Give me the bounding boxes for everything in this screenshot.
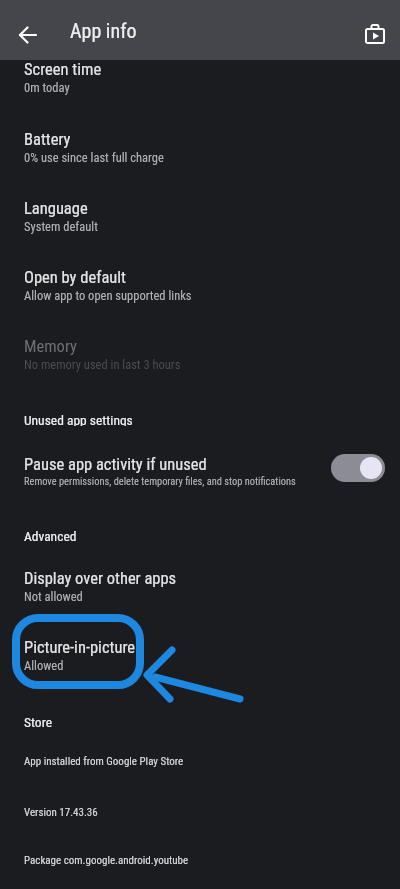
staticText: System default — [24, 219, 98, 234]
staticText: 0% use since last full charge — [24, 150, 164, 165]
staticText: Not allowed — [24, 589, 83, 604]
staticText: Pause app activity if unused — [24, 455, 207, 474]
staticText: App installed from Google Play Store — [24, 755, 184, 768]
button[interactable]: Picture-in-picture — [0, 625, 400, 687]
staticText: Battery — [24, 130, 71, 149]
staticText: Memory — [24, 337, 77, 356]
button[interactable]: Battery — [0, 117, 400, 179]
button[interactable] — [355, 14, 395, 54]
staticText: Allow app to open supported links — [24, 288, 192, 303]
staticText: 0m today — [24, 80, 70, 95]
button[interactable]: Language — [0, 186, 400, 248]
button[interactable] — [8, 15, 48, 55]
button[interactable]: Pause app activity if unused — [0, 440, 400, 498]
button[interactable]: Screen time — [0, 47, 400, 109]
staticText: Version 17.43.36 — [24, 806, 98, 819]
staticText: Language — [24, 199, 88, 218]
button[interactable] — [331, 454, 385, 482]
staticText: Picture-in-picture — [24, 638, 135, 657]
staticText: Package com.google.android.youtube — [24, 854, 189, 867]
staticText: Display over other apps — [24, 569, 177, 588]
button[interactable]: Package com.google.android.youtube — [0, 840, 400, 880]
staticText: Remove permissions, delete temporary fil… — [24, 475, 296, 487]
staticText: Advanced — [24, 528, 77, 542]
staticText: App info — [70, 19, 137, 42]
staticText: Unused app settings — [24, 412, 133, 426]
button[interactable]: App installed from Google Play Store — [0, 741, 400, 781]
staticText: Screen time — [24, 60, 102, 79]
staticText: Open by default — [24, 268, 126, 287]
staticText: Allowed — [24, 658, 64, 673]
button[interactable]: Memory — [0, 324, 400, 386]
staticText: Store — [24, 714, 52, 728]
staticText: No memory used in last 3 hours — [24, 357, 181, 372]
button[interactable]: Open by default — [0, 255, 400, 317]
button[interactable]: Version 17.43.36 — [0, 792, 400, 832]
button[interactable]: Display over other apps — [0, 556, 400, 618]
